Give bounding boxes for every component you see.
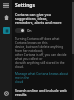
staticText: Turning Cortana off does what Cortana kn… <box>15 37 70 69</box>
staticText: Cortana can give you suggestions, ideas,… <box>15 12 70 25</box>
button[interactable]: Notebook <box>0 25 12 35</box>
button[interactable]: Home <box>0 13 12 22</box>
button[interactable]: Settings <box>0 88 12 99</box>
staticText: Search online and include web results <box>15 88 70 97</box>
button[interactable]: Menu <box>0 1 12 10</box>
staticText: On <box>27 29 32 33</box>
button[interactable]: Manage what Cortana knows about me in th… <box>15 72 70 84</box>
staticText: Settings <box>15 2 35 9</box>
button[interactable]: On <box>15 27 32 34</box>
